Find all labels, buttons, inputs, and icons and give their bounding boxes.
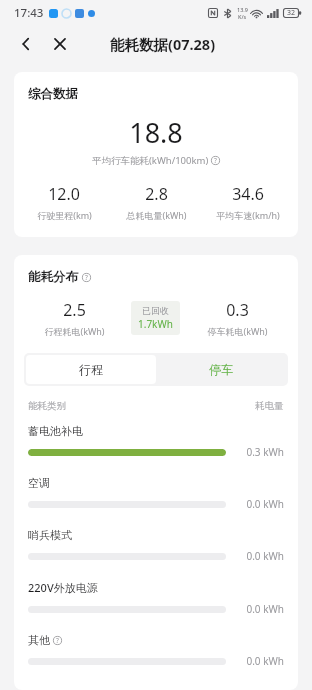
staticText: 行程 — [79, 362, 103, 377]
staticText: 220V外放电源 — [28, 580, 98, 595]
staticText: 0.3 kWh — [246, 445, 284, 459]
staticText: 停车 — [209, 362, 233, 377]
staticText: 停车耗电(kWh) — [207, 325, 268, 337]
staticText: 能耗分布 — [28, 269, 78, 285]
staticText: 0.0 kWh — [246, 602, 284, 616]
staticText: 耗电量 — [255, 400, 284, 412]
staticText: 蓄电池补电 — [28, 424, 83, 438]
staticText: 18.8 — [129, 114, 183, 151]
button[interactable]: 哨兵模式 — [14, 528, 298, 580]
staticText: 12.0 — [48, 183, 80, 205]
staticText: 行程耗电(kWh) — [44, 325, 105, 337]
staticText: 17:43 — [14, 5, 44, 21]
staticText: 34.6 — [232, 183, 264, 205]
staticText: ? — [214, 156, 217, 165]
staticText: 能耗数据(07.28) — [110, 34, 216, 54]
staticText: 2.8 — [145, 183, 168, 205]
staticText: 已回收 — [142, 305, 169, 316]
staticText: 空调 — [28, 476, 50, 490]
staticText: 0.0 kWh — [246, 497, 284, 511]
button[interactable]: 空调 — [14, 476, 298, 528]
staticText: 13.9 — [237, 6, 248, 13]
button[interactable]: Close — [46, 30, 74, 58]
button[interactable]: 停车 — [156, 355, 286, 384]
staticText: 总耗电量(kWh) — [126, 209, 187, 221]
staticText: 0.0 kWh — [246, 549, 284, 563]
button[interactable]: 蓄电池补电 — [14, 424, 298, 476]
staticText: 平均行车能耗(kWh/100km) — [92, 154, 209, 167]
staticText: 平均车速(km/h) — [216, 209, 280, 221]
staticText: K/s — [238, 13, 247, 20]
staticText: 其他 — [28, 633, 50, 647]
button[interactable]: Back — [12, 30, 40, 58]
button[interactable]: 行程 — [26, 355, 156, 384]
staticText: ? — [56, 636, 59, 645]
staticText: ? — [85, 273, 88, 282]
button[interactable]: 220V外放电源 — [14, 580, 298, 633]
staticText: 哨兵模式 — [28, 528, 72, 542]
staticText: 32 — [287, 8, 296, 18]
staticText: 1.7kWh — [138, 317, 173, 331]
staticText: 0.0 kWh — [246, 654, 284, 668]
staticText: 2.5 — [63, 299, 86, 321]
button[interactable]: 其他 — [14, 633, 298, 685]
staticText: 0.3 — [226, 299, 249, 321]
staticText: 能耗类别 — [28, 400, 66, 412]
staticText: 综合数据 — [28, 86, 78, 102]
staticText: 行驶里程(km) — [37, 209, 92, 221]
